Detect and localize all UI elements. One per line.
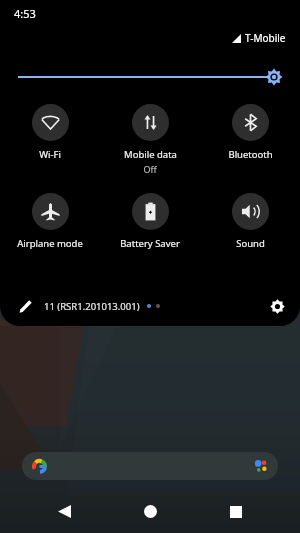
staticText: Mobile data <box>124 148 177 161</box>
staticText: 11 (RSR1.201013.001) <box>44 300 140 313</box>
button[interactable]: Bluetooth <box>200 104 300 161</box>
staticText: Sound <box>236 237 265 250</box>
button[interactable]: Sound <box>200 193 300 250</box>
button[interactable]: Battery Saver <box>100 193 200 250</box>
button[interactable]: Wi-Fi <box>0 104 100 161</box>
button[interactable]: Back <box>42 490 86 533</box>
staticText: Off <box>143 163 157 175</box>
button[interactable]: Settings <box>264 293 290 319</box>
staticText: 4:53 <box>14 6 36 21</box>
button[interactable]: Airplane mode <box>0 193 100 250</box>
staticText: T-Mobile <box>245 31 286 45</box>
button[interactable]: Recent apps <box>214 490 258 533</box>
button[interactable]: Search <box>22 452 278 480</box>
button[interactable]: Mobile data <box>100 104 200 175</box>
staticText: Bluetooth <box>228 148 273 161</box>
staticText: Wi-Fi <box>39 148 61 161</box>
staticText: Airplane mode <box>17 237 83 250</box>
button[interactable]: Brightness <box>16 64 284 90</box>
staticText: Battery Saver <box>120 237 180 250</box>
button[interactable]: Edit tiles <box>12 293 38 319</box>
button[interactable]: Home <box>128 490 172 533</box>
